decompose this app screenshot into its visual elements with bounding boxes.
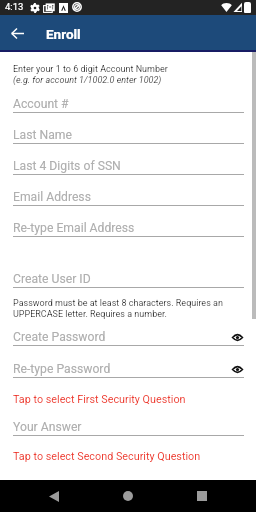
staticText: Enroll: [46, 26, 81, 42]
staticText: Enter your 1 to 6 digit Account Number: [13, 64, 168, 75]
staticText: Password must be at least 8 characters. …: [13, 298, 223, 309]
button[interactable]: [13, 211, 244, 237]
staticText: UPPERCASE letter. Requires a number.: [13, 309, 167, 320]
staticText: (e.g. for account 1/1002.0 enter 1002): [13, 75, 162, 86]
button[interactable]: Back: [44, 486, 64, 506]
staticText: Email Address: [13, 190, 91, 204]
button[interactable]: [13, 149, 244, 175]
button[interactable]: [13, 262, 244, 288]
staticText: Last Name: [13, 128, 72, 142]
button[interactable]: Home: [118, 486, 138, 506]
staticText: Tap to select First Security Question: [13, 393, 186, 406]
button[interactable]: Recents: [192, 486, 212, 506]
button[interactable]: [13, 87, 244, 113]
button[interactable]: [13, 410, 244, 436]
button[interactable]: [13, 118, 244, 144]
button[interactable]: Show password: [230, 362, 245, 377]
staticText: Re-type Email Address: [13, 221, 135, 235]
button[interactable]: [13, 352, 244, 378]
staticText: Tap to select Second Security Question: [13, 450, 201, 463]
staticText: Account #: [13, 97, 69, 111]
staticText: Last 4 Digits of SSN: [13, 159, 121, 173]
staticText: Re-type Password: [13, 362, 111, 376]
staticText: Create Password: [13, 330, 106, 344]
staticText: 4:13: [5, 1, 24, 12]
staticText: Create User ID: [13, 272, 91, 286]
button[interactable]: Tap to select Second Security Question: [0, 449, 256, 466]
button[interactable]: Tap to select First Security Question: [0, 392, 256, 409]
staticText: Your Answer: [13, 420, 82, 434]
button[interactable]: [13, 320, 244, 346]
button[interactable]: Show password: [230, 330, 245, 345]
button[interactable]: Back: [7, 23, 27, 43]
button[interactable]: [13, 180, 244, 206]
